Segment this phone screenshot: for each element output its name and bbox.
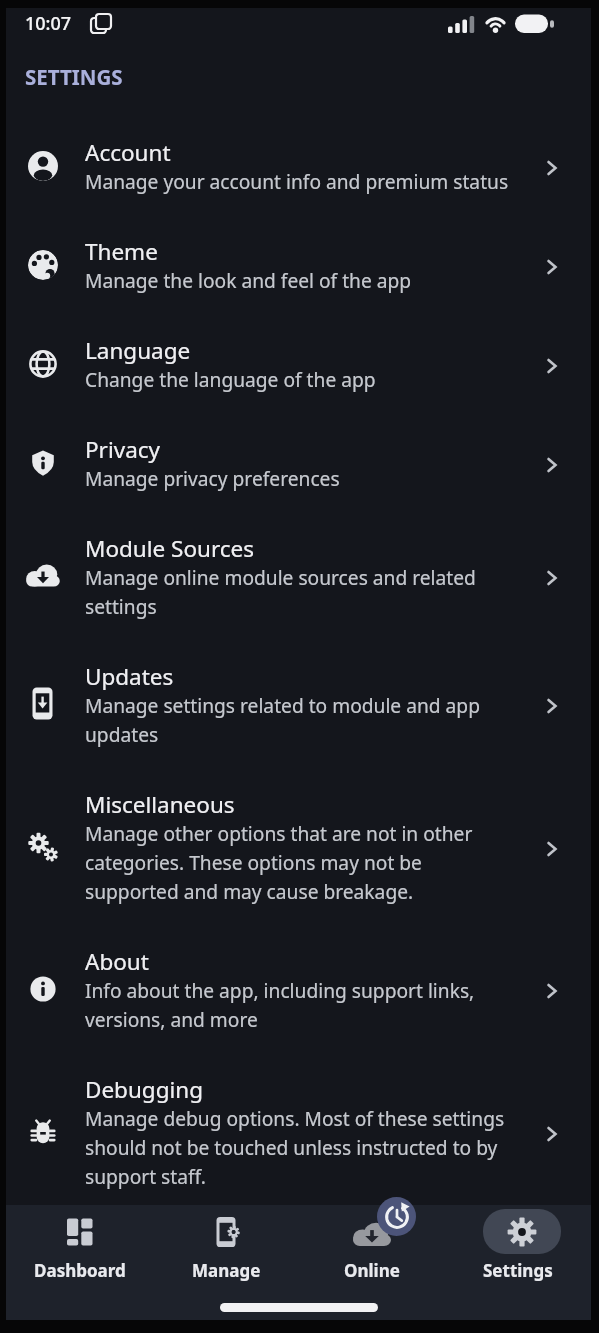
button[interactable]: Updates bbox=[6, 642, 591, 770]
staticText: Language bbox=[85, 335, 191, 366]
staticText: Manage privacy preferences bbox=[85, 465, 340, 491]
button[interactable]: Module Sources bbox=[6, 514, 591, 642]
staticText: Info about the app, including support li… bbox=[85, 977, 475, 1032]
button[interactable]: Account bbox=[6, 118, 591, 217]
staticText: Manage bbox=[192, 1259, 261, 1282]
staticText: Manage your account info and premium sta… bbox=[85, 168, 509, 194]
button[interactable]: Privacy bbox=[6, 415, 591, 514]
button[interactable]: Theme bbox=[6, 217, 591, 316]
staticText: Account bbox=[85, 137, 171, 168]
staticText: Module Sources bbox=[85, 533, 255, 564]
staticText: Change the language of the app bbox=[85, 366, 376, 392]
staticText: Dashboard bbox=[34, 1259, 126, 1282]
button[interactable]: Debugging bbox=[6, 1055, 591, 1212]
staticText: Debugging bbox=[85, 1074, 204, 1105]
staticText: Manage other options that are not in oth… bbox=[85, 820, 473, 904]
button[interactable]: Manage bbox=[153, 1209, 299, 1282]
staticText: Updates bbox=[85, 661, 174, 692]
staticText: Online bbox=[344, 1259, 400, 1282]
button[interactable]: Language bbox=[6, 316, 591, 415]
button[interactable]: Online bbox=[299, 1209, 445, 1282]
button[interactable]: About bbox=[6, 927, 591, 1055]
staticText: Manage settings related to module and ap… bbox=[85, 692, 480, 747]
button[interactable]: Settings bbox=[445, 1209, 591, 1282]
staticText: Settings bbox=[483, 1259, 553, 1282]
staticText: SETTINGS bbox=[25, 63, 123, 91]
staticText: Manage the look and feel of the app bbox=[85, 267, 412, 293]
staticText: Manage debug options. Most of these sett… bbox=[85, 1105, 505, 1189]
staticText: Theme bbox=[85, 236, 158, 267]
button[interactable]: Miscellaneous bbox=[6, 770, 591, 927]
staticText: Manage online module sources and related… bbox=[85, 564, 476, 619]
staticText: Miscellaneous bbox=[85, 789, 235, 820]
staticText: Privacy bbox=[85, 434, 161, 465]
staticText: About bbox=[85, 946, 149, 977]
button[interactable]: Dashboard bbox=[6, 1209, 153, 1282]
staticText: 10:07 bbox=[25, 11, 72, 36]
